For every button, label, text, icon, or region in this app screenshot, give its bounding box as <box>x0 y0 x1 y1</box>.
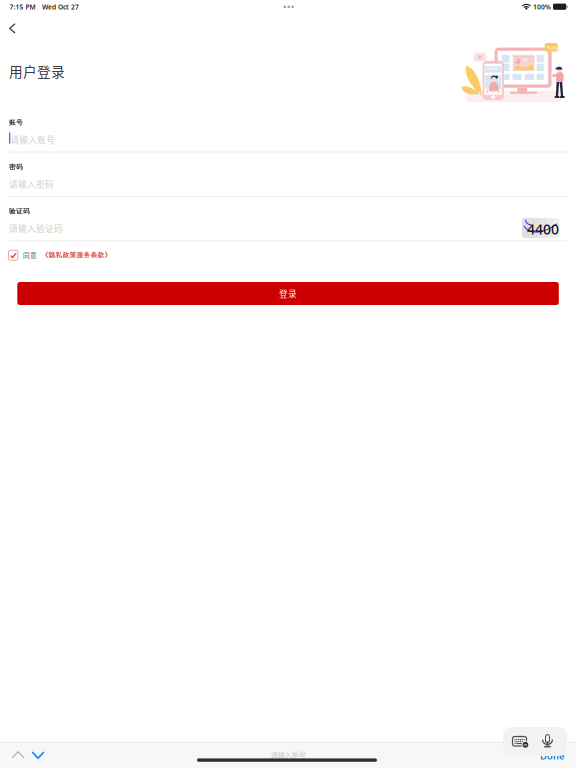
staticText: 请输入密码 <box>9 178 54 190</box>
button[interactable]: Agree to privacy terms <box>8 250 18 260</box>
button[interactable]: Done <box>540 750 566 762</box>
button[interactable]: Dictate <box>540 733 555 749</box>
button[interactable]: Back <box>3 18 27 39</box>
staticText: Wed Oct 27 <box>42 3 79 11</box>
staticText: 4400 <box>527 219 559 239</box>
staticText: Done <box>540 750 564 762</box>
staticText: 同意 <box>23 250 37 260</box>
button[interactable]: 《隐私政策服务条款》 <box>41 251 113 259</box>
staticText: 用户登录 <box>9 61 65 81</box>
staticText: 验证码 <box>9 207 30 215</box>
staticText: 密码 <box>9 163 23 171</box>
staticText: 7:15 PM <box>9 3 35 11</box>
button[interactable]: Next field <box>28 748 48 762</box>
staticText: 请输入账号 <box>10 133 55 146</box>
staticText: 登录 <box>279 287 297 300</box>
button[interactable]: 登录 <box>17 282 559 305</box>
staticText: 账号 <box>9 118 23 127</box>
button[interactable]: Previous field <box>8 748 28 762</box>
button[interactable]: Refresh captcha <box>522 218 560 238</box>
button[interactable]: Hide keyboard <box>512 736 533 746</box>
staticText: 100% <box>533 3 551 11</box>
staticText: 《隐私政策服务条款》 <box>41 251 111 259</box>
staticText: 请输入账号 <box>270 749 305 760</box>
staticText: 请输入验证码 <box>9 222 63 234</box>
